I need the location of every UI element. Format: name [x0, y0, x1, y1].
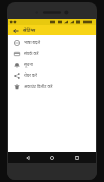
- staticText: शेयर करें: [24, 73, 38, 79]
- button[interactable]: Recent apps: [72, 153, 82, 163]
- button[interactable]: Home: [47, 153, 57, 163]
- staticText: संपर्क करें: [24, 51, 39, 57]
- staticText: अकाउंट डिलीट करें: [24, 84, 53, 90]
- button[interactable]: संपर्क करें: [8, 48, 96, 59]
- button[interactable]: Back: [23, 153, 33, 163]
- staticText: सेटिंग्स: [23, 27, 36, 34]
- button[interactable]: Back: [11, 26, 20, 35]
- button[interactable]: सूचना: [8, 59, 96, 70]
- button[interactable]: अकाउंट डिलीट करें: [8, 81, 96, 92]
- button[interactable]: शेयर करें: [8, 70, 96, 81]
- staticText: सूचना: [24, 62, 33, 68]
- button[interactable]: भाषा बदलें: [8, 37, 96, 48]
- staticText: भाषा बदलें: [24, 40, 41, 46]
